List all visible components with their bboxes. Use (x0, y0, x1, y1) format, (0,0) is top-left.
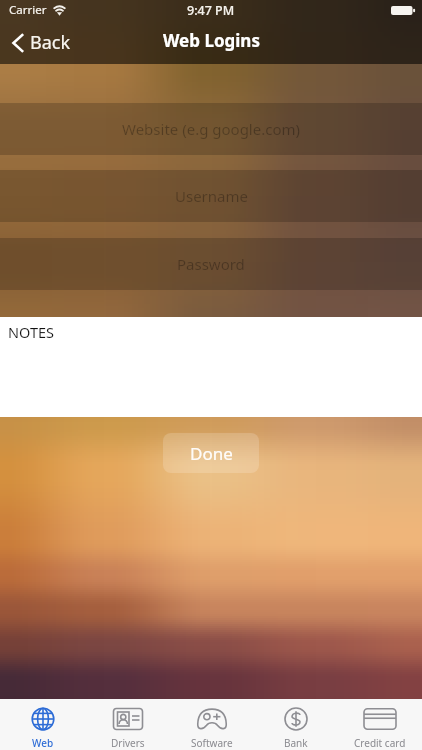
staticText: Password (177, 254, 245, 274)
button[interactable]: Done (163, 433, 259, 473)
staticText: Software (191, 736, 233, 750)
staticText: Drivers (111, 736, 145, 750)
staticText: Done (190, 442, 233, 465)
staticText: 9:47 PM (187, 2, 235, 19)
button[interactable]: Back (0, 30, 83, 55)
button[interactable]: Password (0, 238, 422, 290)
staticText: Credit card (354, 736, 406, 750)
staticText: NOTES (8, 322, 54, 342)
staticText: Carrier (9, 2, 47, 18)
button[interactable]: Website (e.g google.com) (0, 103, 422, 155)
button[interactable]: Web (0, 699, 85, 750)
staticText: Website (e.g google.com) (122, 119, 301, 139)
button[interactable]: Bank (254, 699, 338, 750)
button[interactable]: Drivers (85, 699, 170, 750)
button[interactable]: Username (0, 170, 422, 222)
button[interactable]: Credit card (338, 699, 422, 750)
button[interactable]: Software (170, 699, 254, 750)
staticText: Back (30, 30, 71, 55)
staticText: Web Logins (163, 29, 260, 52)
staticText: Bank (284, 736, 308, 750)
staticText: Web (32, 736, 54, 750)
staticText: Username (175, 186, 248, 206)
button[interactable]: NOTES (0, 317, 422, 417)
